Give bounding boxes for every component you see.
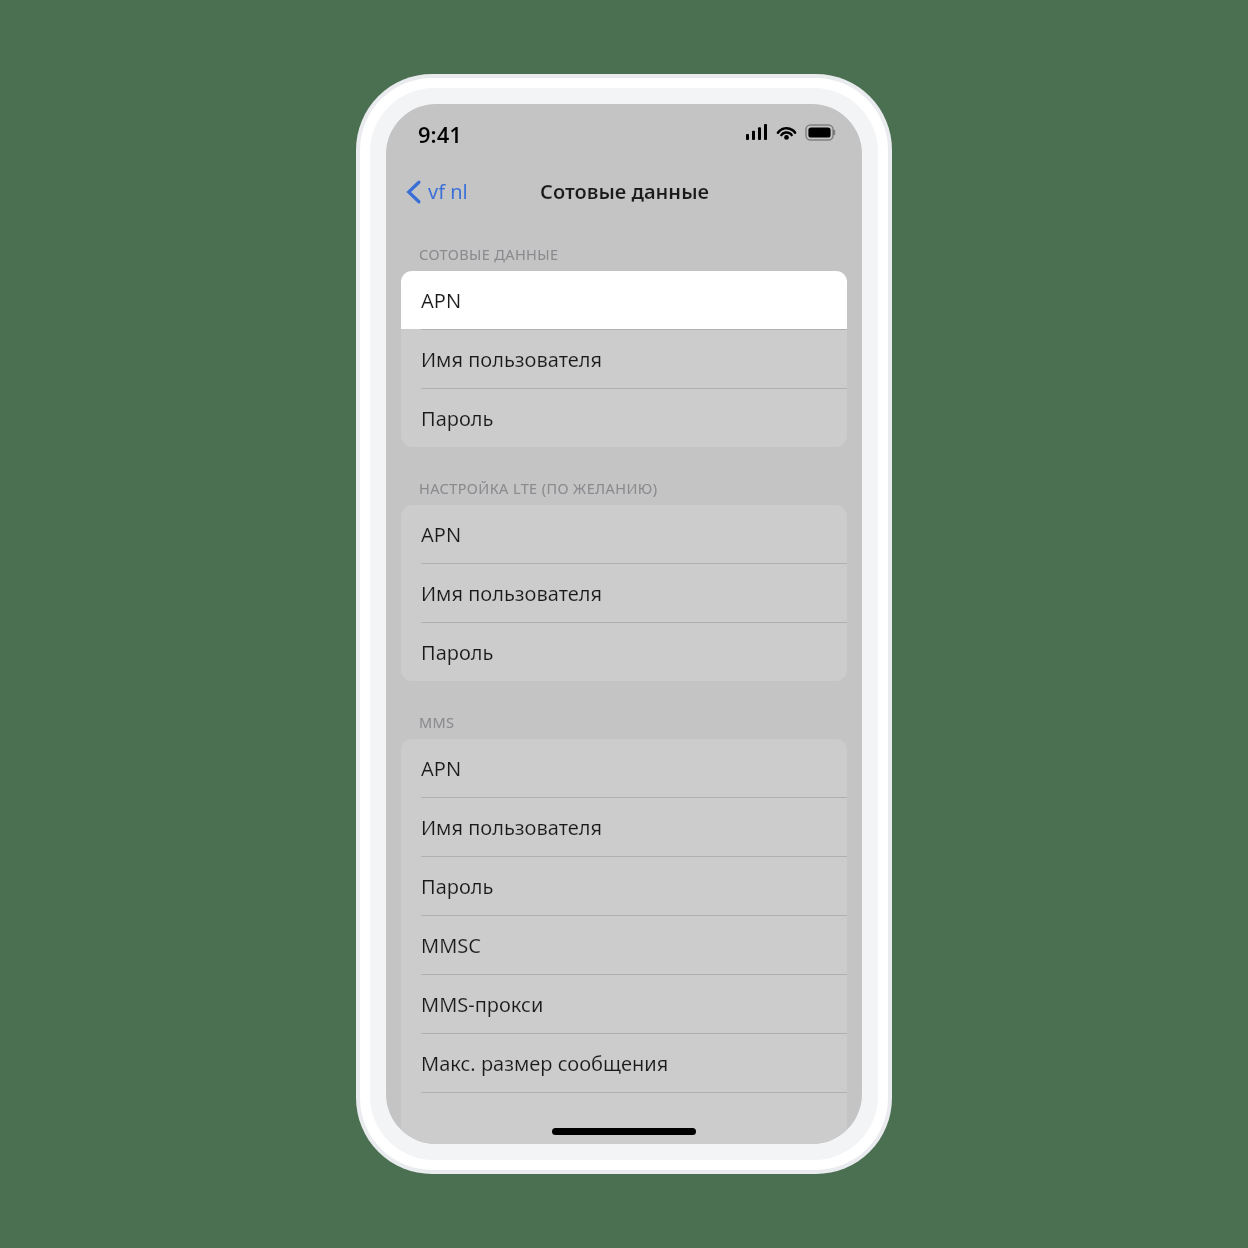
staticText: APN: [421, 287, 462, 314]
staticText: Имя пользователя: [421, 346, 603, 373]
staticText: Имя пользователя: [421, 814, 603, 841]
staticText: Сотовые данные: [540, 178, 709, 205]
button[interactable]: Пароль: [401, 857, 847, 915]
button[interactable]: APN: [401, 739, 847, 797]
staticText: Пароль: [421, 405, 494, 432]
staticText: Имя пользователя: [421, 580, 603, 607]
button[interactable]: APN: [401, 505, 847, 563]
staticText: APN: [421, 521, 462, 548]
button[interactable]: [401, 1093, 847, 1144]
staticText: Пароль: [421, 873, 494, 900]
staticText: MMS: [419, 712, 455, 732]
staticText: 9:41: [418, 119, 462, 149]
staticText: СОТОВЫЕ ДАННЫЕ: [419, 244, 559, 264]
staticText: MMSC: [421, 932, 481, 959]
button[interactable]: vf nl: [400, 174, 474, 209]
staticText: Макс. размер сообщения: [421, 1050, 669, 1077]
button[interactable]: Имя пользователя: [401, 798, 847, 856]
button[interactable]: MMS-прокси: [401, 975, 847, 1033]
button[interactable]: Имя пользователя: [401, 330, 847, 388]
staticText: MMS-прокси: [421, 991, 544, 1018]
button[interactable]: MMSC: [401, 916, 847, 974]
button[interactable]: Пароль: [401, 389, 847, 447]
staticText: НАСТРОЙКА LTE (ПО ЖЕЛАНИЮ): [419, 478, 658, 498]
staticText: APN: [421, 755, 462, 782]
button[interactable]: APN: [401, 271, 847, 329]
staticText: Пароль: [421, 639, 494, 666]
button[interactable]: Пароль: [401, 623, 847, 681]
staticText: vf nl: [428, 178, 468, 205]
button[interactable]: Макс. размер сообщения: [401, 1034, 847, 1092]
button[interactable]: Имя пользователя: [401, 564, 847, 622]
